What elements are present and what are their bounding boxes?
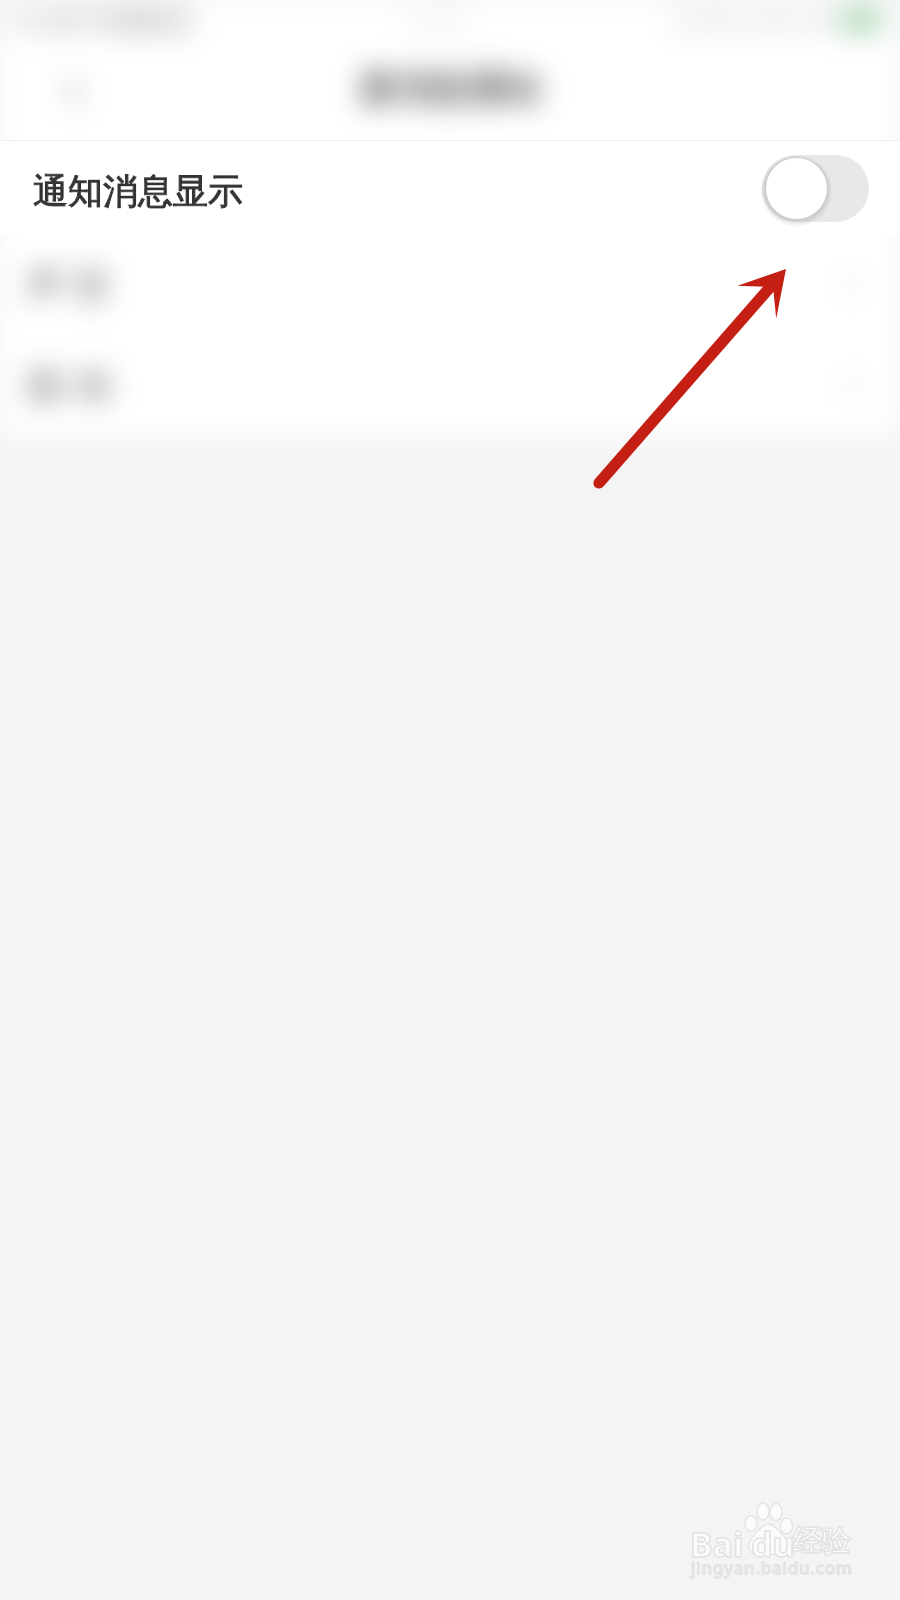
staticText: 振动 bbox=[22, 362, 116, 409]
staticText: 声音 bbox=[22, 262, 116, 309]
staticText: Bai bbox=[690, 1521, 744, 1567]
staticText: 11:24 中国移动 bbox=[10, 2, 193, 38]
staticText: jingyan.baidu.com bbox=[691, 1556, 853, 1579]
staticText: du bbox=[751, 1521, 795, 1567]
staticText: Bai bbox=[690, 1521, 744, 1567]
staticText: 通知消息显示 bbox=[33, 169, 243, 213]
staticText: 经验 bbox=[792, 1523, 850, 1560]
staticText: 经验 bbox=[792, 1523, 850, 1560]
button[interactable]: 通知消息显示开关 bbox=[762, 155, 869, 222]
staticText: 新消息通知 bbox=[360, 66, 540, 111]
staticText: jingyan.baidu.com bbox=[691, 1556, 853, 1579]
staticText: 通知消息显示 bbox=[33, 169, 243, 213]
staticText: du bbox=[751, 1521, 795, 1567]
button[interactable]: 通知消息显示 bbox=[0, 141, 900, 234]
